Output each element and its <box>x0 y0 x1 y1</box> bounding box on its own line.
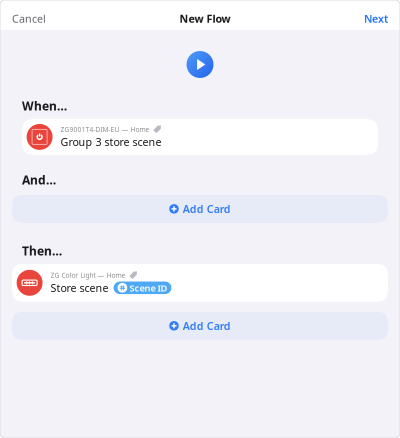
staticText: New Flow <box>179 11 230 26</box>
staticText: Store scene <box>51 281 109 295</box>
staticText: Scene ID <box>129 282 167 294</box>
staticText: Then… <box>22 243 62 259</box>
staticText: Add Card <box>183 202 231 216</box>
button[interactable]: Add Card <box>12 312 388 340</box>
staticText: Group 3 store scene <box>61 135 162 149</box>
button[interactable]: ZG9001T4-DIM-EU — Home <box>22 119 378 155</box>
staticText: Next <box>364 11 388 26</box>
staticText: And… <box>22 172 56 188</box>
staticText: Cancel <box>12 11 46 26</box>
staticText: Add Card <box>183 319 231 333</box>
staticText: ZG9001T4-DIM-EU — Home <box>61 125 150 134</box>
button[interactable]: Cancel <box>12 11 46 26</box>
staticText: When… <box>22 98 67 114</box>
button[interactable]: Add Card <box>12 195 388 223</box>
button[interactable]: Next <box>364 11 388 26</box>
staticText: ZG Color Light — Home <box>51 271 126 280</box>
button[interactable]: ZG Color Light — Home <box>12 264 388 302</box>
